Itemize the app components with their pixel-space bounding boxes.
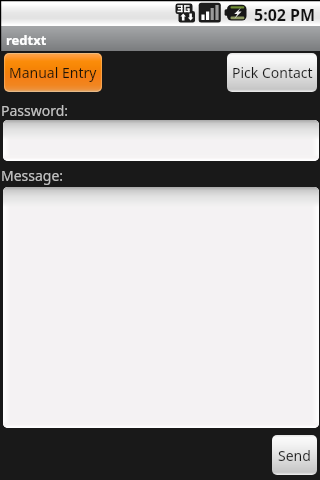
staticText: Manual Entry	[9, 63, 97, 82]
staticText: 5:02 PM	[254, 4, 316, 26]
button[interactable]: Password input field	[3, 120, 319, 161]
staticText: Message:	[1, 166, 64, 185]
staticText: redtxt	[6, 31, 47, 49]
button[interactable]: Manual Entry	[4, 53, 102, 92]
staticText: Password:	[1, 101, 69, 120]
staticText: Pick Contact	[232, 63, 313, 82]
staticText: Send	[278, 446, 311, 465]
button[interactable]: Message input field	[3, 187, 319, 428]
button[interactable]: Pick Contact	[227, 53, 317, 92]
button[interactable]: Send	[272, 435, 317, 475]
